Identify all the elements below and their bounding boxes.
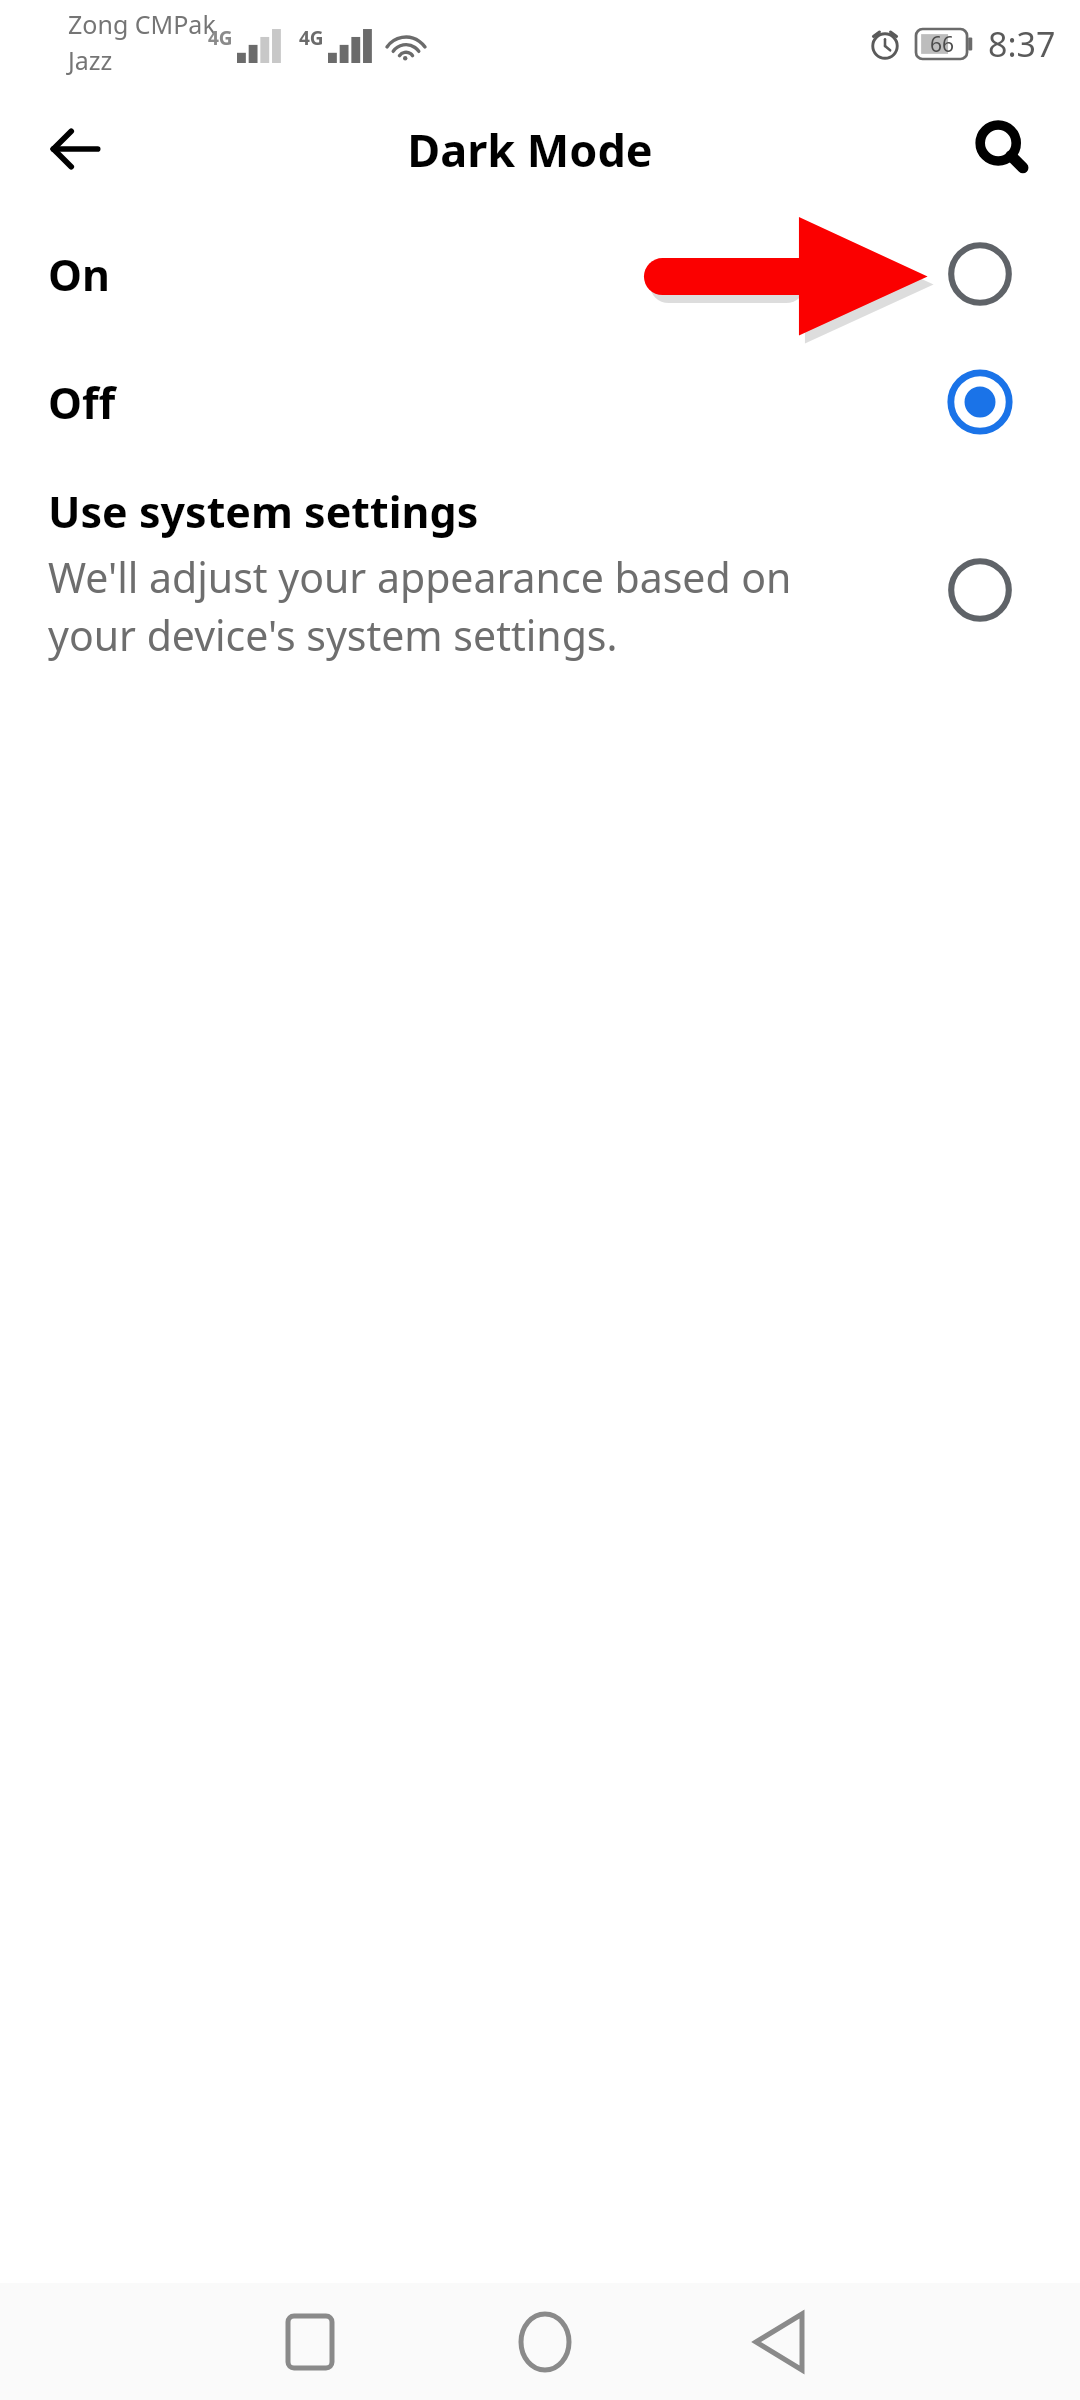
staticText: 8:37	[988, 21, 1056, 67]
button[interactable]: Search	[948, 94, 1058, 204]
button[interactable]: Use system settings	[0, 466, 1080, 676]
button[interactable]: Recent apps	[245, 2283, 375, 2400]
staticText: 4G	[299, 25, 324, 51]
staticText: 66	[930, 30, 955, 59]
staticText: On	[48, 245, 110, 304]
staticText: Use system settings	[48, 482, 479, 541]
staticText: Zong CMPak	[68, 7, 216, 41]
staticText: Jazz	[68, 43, 113, 77]
button[interactable]: Back	[714, 2283, 844, 2400]
button[interactable]: Off	[0, 338, 1080, 466]
button[interactable]: On	[0, 210, 1080, 338]
staticText: 4G	[208, 25, 233, 51]
button[interactable]: Home	[480, 2283, 610, 2400]
staticText: We'll adjust your appearance based on yo…	[48, 549, 838, 663]
staticText: Off	[48, 373, 116, 432]
staticText: Dark Mode	[407, 119, 653, 180]
button[interactable]: Back	[20, 94, 130, 204]
